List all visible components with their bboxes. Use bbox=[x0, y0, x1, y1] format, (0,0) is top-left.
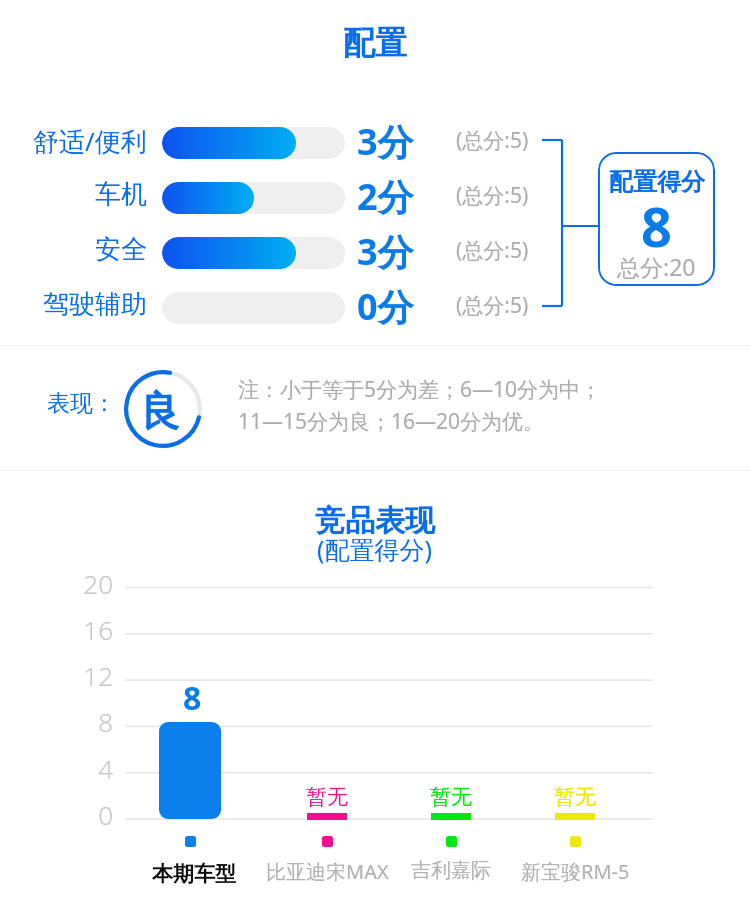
button[interactable] bbox=[159, 722, 221, 819]
staticText: 3分 bbox=[357, 227, 414, 276]
button[interactable] bbox=[0, 282, 750, 333]
button[interactable]: 比亚迪宋MAX bbox=[266, 858, 389, 885]
staticText: 暂无 bbox=[306, 784, 348, 810]
staticText: 总分:20 bbox=[617, 251, 696, 282]
staticText: 8 bbox=[98, 704, 113, 739]
staticText: 表现： bbox=[47, 389, 116, 418]
staticText: 暂无 bbox=[554, 784, 596, 810]
staticText: 车机 bbox=[95, 178, 147, 211]
staticText: 配置 bbox=[343, 23, 407, 63]
staticText: 8 bbox=[183, 676, 202, 720]
staticText: 12 bbox=[83, 658, 113, 693]
staticText: 良 bbox=[140, 386, 180, 436]
staticText: (总分:5) bbox=[456, 236, 529, 265]
button[interactable] bbox=[0, 172, 750, 223]
staticText: (总分:5) bbox=[456, 181, 529, 210]
staticText: (配置得分) bbox=[317, 532, 433, 566]
staticText: 驾驶辅助 bbox=[43, 288, 147, 321]
staticText: 20 bbox=[83, 566, 113, 601]
staticText: 16 bbox=[83, 612, 113, 647]
staticText: 竞品表现 bbox=[315, 502, 435, 540]
staticText: 3分 bbox=[357, 117, 414, 166]
staticText: 安全 bbox=[95, 233, 147, 266]
staticText: 配置得分 bbox=[609, 167, 705, 197]
staticText: 4 bbox=[98, 751, 113, 786]
button[interactable]: 配置得分 bbox=[598, 152, 715, 286]
staticText: 2分 bbox=[357, 172, 414, 221]
staticText: 注：小于等于5分为差；6—10分为中； 11—15分为良；16—20分为优。 bbox=[238, 375, 602, 436]
staticText: 8 bbox=[641, 189, 672, 263]
button[interactable]: 本期车型 bbox=[152, 861, 236, 887]
staticText: 0 bbox=[98, 797, 113, 832]
staticText: 0分 bbox=[357, 282, 414, 331]
staticText: 舒适/便利 bbox=[33, 123, 147, 159]
staticText: 暂无 bbox=[430, 784, 472, 810]
staticText: (总分:5) bbox=[456, 291, 529, 320]
button[interactable] bbox=[0, 227, 750, 278]
button[interactable]: 新宝骏RM-5 bbox=[521, 858, 630, 885]
staticText: (总分:5) bbox=[456, 126, 529, 155]
button[interactable] bbox=[0, 117, 750, 168]
button[interactable]: 吉利嘉际 bbox=[411, 858, 491, 883]
